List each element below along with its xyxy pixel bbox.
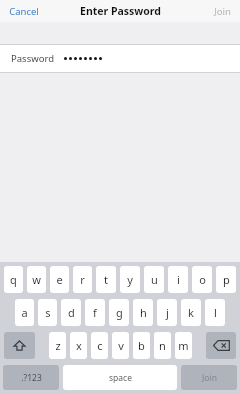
staticText: e: [56, 272, 63, 287]
button[interactable]: j: [157, 299, 177, 326]
button[interactable]: Join: [205, 0, 240, 22]
button[interactable]: e: [50, 266, 69, 293]
staticText: a: [21, 305, 28, 320]
staticText: l: [214, 305, 217, 320]
button[interactable]: Shift: [4, 332, 35, 359]
staticText: z: [55, 338, 61, 353]
staticText: space: [109, 372, 132, 384]
button[interactable]: Join: [181, 365, 237, 390]
button[interactable]: v: [112, 332, 129, 359]
staticText: Password: [11, 52, 54, 65]
staticText: .?123: [21, 372, 42, 384]
staticText: o: [199, 272, 206, 287]
staticText: f: [93, 305, 97, 320]
button[interactable]: c: [91, 332, 108, 359]
button[interactable]: z: [49, 332, 66, 359]
staticText: s: [45, 305, 51, 320]
staticText: r: [80, 272, 85, 287]
staticText: h: [140, 305, 147, 320]
staticText: m: [178, 338, 189, 353]
button[interactable]: a: [15, 299, 34, 326]
staticText: Join: [202, 372, 217, 384]
button[interactable]: q: [4, 266, 23, 293]
staticText: v: [118, 338, 124, 353]
staticText: d: [68, 305, 75, 320]
staticText: y: [127, 272, 133, 287]
button[interactable]: Password: [0, 45, 240, 72]
staticText: Join: [214, 5, 231, 18]
button[interactable]: p: [216, 266, 236, 293]
staticText: u: [151, 272, 158, 287]
staticText: k: [188, 305, 194, 320]
button[interactable]: y: [120, 266, 140, 293]
button[interactable]: l: [205, 299, 225, 326]
button[interactable]: w: [27, 266, 46, 293]
staticText: i: [177, 272, 180, 287]
staticText: q: [10, 272, 17, 287]
button[interactable]: .?123: [3, 365, 59, 390]
button[interactable]: x: [70, 332, 87, 359]
staticText: t: [104, 272, 108, 287]
button[interactable]: Cancel: [0, 0, 48, 22]
button[interactable]: u: [144, 266, 164, 293]
staticText: c: [97, 338, 103, 353]
staticText: b: [138, 338, 145, 353]
button[interactable]: s: [38, 299, 57, 326]
button[interactable]: h: [133, 299, 153, 326]
button[interactable]: d: [61, 299, 81, 326]
button[interactable]: t: [96, 266, 116, 293]
staticText: n: [159, 338, 166, 353]
staticText: j: [166, 305, 169, 320]
button[interactable]: b: [133, 332, 150, 359]
staticText: w: [32, 272, 41, 287]
button[interactable]: g: [109, 299, 129, 326]
button[interactable]: k: [181, 299, 201, 326]
staticText: g: [116, 305, 123, 320]
button[interactable]: n: [154, 332, 171, 359]
button[interactable]: r: [73, 266, 92, 293]
button[interactable]: space: [63, 365, 177, 390]
button[interactable]: Backspace: [206, 332, 236, 359]
button[interactable]: f: [85, 299, 105, 326]
button[interactable]: o: [192, 266, 212, 293]
staticText: Cancel: [9, 5, 39, 18]
button[interactable]: i: [168, 266, 188, 293]
staticText: Enter Password: [80, 4, 161, 18]
staticText: x: [76, 338, 82, 353]
staticText: p: [223, 272, 230, 287]
button[interactable]: m: [175, 332, 192, 359]
